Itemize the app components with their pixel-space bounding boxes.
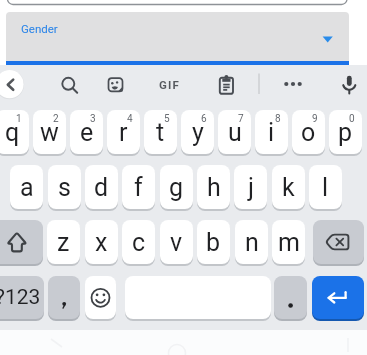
staticText: 9: [312, 113, 318, 125]
staticText: e: [80, 118, 94, 147]
button[interactable]: a: [10, 165, 43, 209]
button[interactable]: [0, 68, 24, 100]
staticText: l: [322, 173, 329, 202]
button[interactable]: [333, 68, 365, 100]
button[interactable]: b: [197, 220, 230, 264]
button[interactable]: h: [197, 165, 230, 209]
staticText: n: [245, 228, 259, 257]
staticText: p: [338, 118, 353, 147]
staticText: 2: [53, 113, 59, 125]
staticText: s: [58, 173, 71, 202]
staticText: 0: [349, 113, 355, 125]
button[interactable]: y: [181, 110, 214, 154]
staticText: GIF: [159, 78, 181, 91]
staticText: b: [206, 228, 221, 257]
button[interactable]: [154, 68, 186, 100]
button[interactable]: c: [122, 220, 155, 264]
staticText: c: [132, 228, 146, 257]
button[interactable]: [6, 12, 349, 61]
staticText: z: [57, 228, 70, 257]
staticText: 6: [201, 113, 207, 125]
button[interactable]: z: [47, 220, 80, 264]
button[interactable]: j: [234, 165, 267, 209]
button[interactable]: s: [48, 165, 81, 209]
button[interactable]: t: [144, 110, 177, 154]
staticText: x: [95, 228, 108, 257]
staticText: j: [248, 173, 254, 202]
button[interactable]: [0, 220, 43, 264]
staticText: 4: [127, 113, 133, 125]
button[interactable]: [312, 276, 364, 319]
button[interactable]: [85, 276, 116, 319]
button[interactable]: k: [272, 165, 305, 209]
button[interactable]: u: [218, 110, 251, 154]
button[interactable]: [48, 276, 80, 319]
button[interactable]: g: [160, 165, 193, 209]
staticText: d: [94, 173, 109, 202]
button[interactable]: [125, 276, 271, 319]
button[interactable]: p: [329, 110, 362, 154]
button[interactable]: [210, 68, 242, 100]
button[interactable]: o: [292, 110, 325, 154]
staticText: w: [40, 118, 59, 147]
button[interactable]: r: [107, 110, 140, 154]
staticText: i: [268, 118, 275, 147]
staticText: k: [282, 173, 295, 202]
staticText: o: [301, 118, 316, 147]
button[interactable]: [313, 220, 364, 264]
staticText: q: [5, 118, 20, 147]
staticText: 3: [90, 113, 96, 125]
staticText: Gender: [21, 22, 58, 35]
staticText: ?123: [0, 285, 41, 310]
staticText: g: [169, 173, 184, 202]
staticText: t: [156, 118, 165, 147]
staticText: m: [278, 228, 300, 257]
button[interactable]: [274, 276, 307, 319]
staticText: v: [170, 228, 183, 257]
staticText: 5: [164, 113, 170, 125]
button[interactable]: q: [0, 110, 29, 154]
button[interactable]: l: [309, 165, 342, 209]
button[interactable]: x: [85, 220, 118, 264]
staticText: y: [192, 118, 204, 147]
staticText: 1: [16, 113, 22, 125]
staticText: u: [228, 118, 242, 147]
staticText: f: [134, 173, 143, 202]
button[interactable]: v: [160, 220, 193, 264]
staticText: r: [119, 118, 128, 147]
button[interactable]: i: [255, 110, 288, 154]
button[interactable]: n: [235, 220, 268, 264]
button[interactable]: w: [33, 110, 66, 154]
button[interactable]: [277, 68, 309, 100]
button[interactable]: [99, 68, 131, 100]
button[interactable]: m: [272, 220, 305, 264]
staticText: h: [207, 173, 221, 202]
button[interactable]: [53, 68, 85, 100]
staticText: 8: [275, 113, 281, 125]
button[interactable]: e: [70, 110, 103, 154]
button[interactable]: ?123: [0, 276, 44, 319]
button[interactable]: d: [85, 165, 118, 209]
button[interactable]: f: [122, 165, 155, 209]
staticText: 7: [238, 113, 244, 125]
staticText: a: [20, 173, 34, 202]
